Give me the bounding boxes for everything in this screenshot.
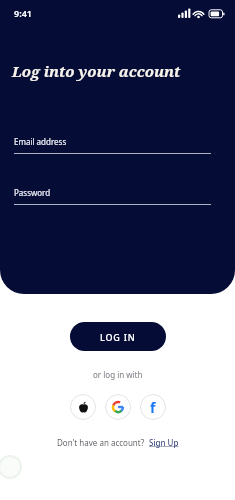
staticText: Email address: [14, 136, 67, 147]
staticText: or log in with: [93, 369, 143, 380]
staticText: Don't have an account?: [57, 437, 149, 448]
staticText: Log into your account: [12, 61, 181, 81]
button[interactable]: LOG IN: [70, 322, 166, 351]
button[interactable]: Email address: [14, 136, 211, 154]
button[interactable]: [70, 394, 96, 420]
staticText: LOG IN: [100, 331, 136, 343]
button[interactable]: f: [140, 394, 166, 420]
button[interactable]: Password: [14, 187, 211, 205]
staticText: 9:41: [14, 7, 32, 19]
staticText: Password: [14, 187, 51, 198]
staticText: f: [150, 398, 156, 417]
button[interactable]: [105, 394, 131, 420]
staticText: Sign Up: [149, 437, 179, 448]
button[interactable]: Don't have an account?: [57, 437, 179, 448]
